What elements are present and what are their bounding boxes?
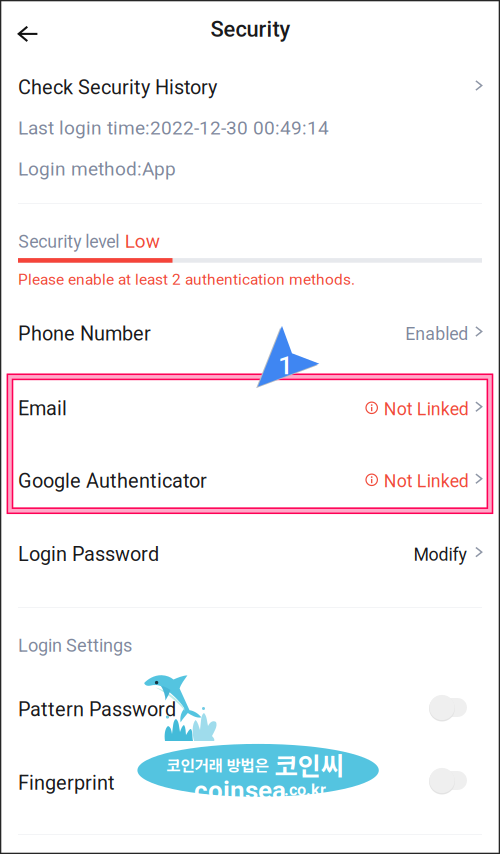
staticText: coinsea: [194, 775, 286, 806]
button[interactable]: Fingerprint: [0, 748, 500, 810]
staticText: Security level: [18, 231, 119, 252]
button[interactable]: Google Authenticator: [0, 447, 500, 517]
button[interactable]: Login Password: [0, 521, 500, 587]
staticText: Last login time:2022-12-30 00:49:14: [18, 117, 329, 139]
staticText: Phone Number: [18, 322, 151, 345]
staticText: 1: [278, 350, 293, 381]
staticText: Security: [210, 16, 290, 42]
staticText: Pattern Password: [18, 698, 176, 721]
staticText: Modify: [413, 544, 466, 565]
staticText: Login Password: [18, 542, 159, 566]
staticText: Login method:App: [18, 158, 176, 180]
staticText: Not Linked: [384, 471, 469, 492]
button[interactable]: Email: [0, 375, 500, 445]
button[interactable]: Pattern Password: [0, 678, 500, 740]
staticText: Fingerprint: [18, 771, 115, 795]
staticText: 코인거래 방법은: [166, 753, 268, 776]
button[interactable]: Check Security History: [0, 65, 482, 107]
staticText: Check Security History: [18, 76, 217, 99]
staticText: Google Authenticator: [18, 469, 207, 493]
staticText: Not Linked: [384, 399, 469, 420]
staticText: 코인씨: [274, 746, 343, 783]
staticText: Low: [125, 230, 160, 252]
staticText: Enabled: [405, 324, 468, 344]
staticText: Login Settings: [18, 635, 132, 656]
staticText: Email: [18, 397, 67, 420]
staticText: .co.kr: [284, 780, 326, 800]
staticText: Please enable at least 2 authentication …: [18, 270, 355, 289]
button[interactable]: Phone Number: [0, 303, 500, 365]
button[interactable]: Back: [0, 5, 56, 53]
